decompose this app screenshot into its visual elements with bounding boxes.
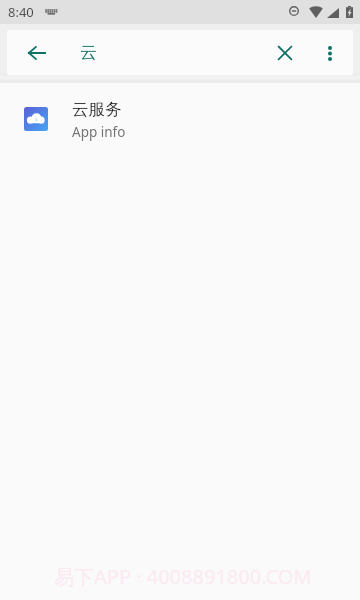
button[interactable]: 云服务 [0, 83, 360, 155]
button[interactable]: Clear search [263, 31, 307, 75]
staticText: 云 [80, 42, 97, 63]
staticText: App info [72, 123, 126, 141]
staticText: 云服务 [72, 99, 122, 120]
staticText: 易下APP · 4008891800.COM [54, 563, 312, 590]
staticText: 8:40 [8, 3, 34, 21]
button[interactable]: More options [308, 31, 352, 75]
button[interactable]: Back [15, 31, 59, 75]
